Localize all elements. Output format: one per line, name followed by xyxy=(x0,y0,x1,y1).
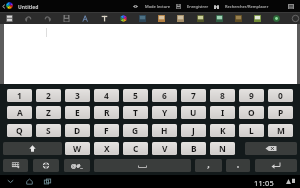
button[interactable]: Tool 7 xyxy=(114,12,132,24)
button[interactable]: 3 xyxy=(65,89,90,102)
staticText: U xyxy=(190,107,197,118)
button[interactable]: Tool 10 xyxy=(171,12,189,24)
button[interactable]: A xyxy=(7,106,32,119)
staticText: Untitled xyxy=(18,4,39,11)
staticText: G xyxy=(132,125,139,136)
button[interactable]: 0 xyxy=(268,89,293,102)
button[interactable]: T xyxy=(123,106,148,119)
staticText: 6 xyxy=(162,90,167,101)
button[interactable]: Period xyxy=(226,159,250,172)
button[interactable]: L xyxy=(239,124,264,137)
button[interactable]: Hide keyboard xyxy=(1,175,19,188)
staticText: Y xyxy=(162,107,168,118)
staticText: 11:05 xyxy=(254,178,274,188)
button[interactable]: U xyxy=(181,106,206,119)
button[interactable]: S xyxy=(36,124,61,137)
button[interactable]: Tool 13 xyxy=(229,12,247,24)
staticText: 2 xyxy=(46,90,51,101)
button[interactable]: More options xyxy=(285,1,296,11)
staticText: F xyxy=(104,125,109,136)
button[interactable]: X xyxy=(94,142,119,155)
button[interactable]: Change keyboard xyxy=(3,159,28,172)
button[interactable]: Input languages xyxy=(33,159,59,172)
button[interactable]: Tool 3 xyxy=(38,12,56,24)
button[interactable]: 7 xyxy=(181,89,206,102)
button[interactable]: K xyxy=(210,124,235,137)
button[interactable]: Tool 6 xyxy=(95,12,113,24)
button[interactable]: Tool 15 xyxy=(267,12,285,24)
button[interactable]: Symbols xyxy=(64,159,90,172)
button[interactable]: I xyxy=(210,106,235,119)
button[interactable]: 5 xyxy=(123,89,148,102)
staticText: 0 xyxy=(278,90,283,101)
button[interactable]: B xyxy=(181,142,206,155)
staticText: @#_ xyxy=(71,162,83,170)
button[interactable] xyxy=(212,1,266,12)
staticText: 1 xyxy=(17,90,22,101)
button[interactable]: Tool 12 xyxy=(210,12,228,24)
staticText: A xyxy=(17,107,23,118)
button[interactable]: C xyxy=(123,142,148,155)
button[interactable]: Tool 14 xyxy=(248,12,266,24)
button[interactable]: Z xyxy=(36,106,61,119)
button[interactable]: N xyxy=(210,142,235,155)
button[interactable]: O xyxy=(239,106,264,119)
staticText: Enregistrer xyxy=(187,4,209,10)
button[interactable]: Backspace xyxy=(245,142,297,155)
staticText: W xyxy=(73,143,82,154)
button[interactable]: 4 xyxy=(94,89,119,102)
button[interactable]: Q xyxy=(7,124,32,137)
staticText: N xyxy=(219,143,226,154)
staticText: D xyxy=(74,125,81,136)
staticText: Rechercher/Remplacer xyxy=(225,4,269,10)
button[interactable]: Back xyxy=(0,0,7,12)
button[interactable]: 9 xyxy=(239,89,264,102)
button[interactable] xyxy=(131,1,170,12)
button[interactable]: Tool 1 xyxy=(0,12,18,24)
button[interactable]: G xyxy=(123,124,148,137)
staticText: J xyxy=(192,125,195,136)
button[interactable]: Recent apps xyxy=(38,175,56,188)
button[interactable]: Tool 2 xyxy=(19,12,37,24)
button[interactable]: Tool 9 xyxy=(152,12,170,24)
staticText: C xyxy=(133,143,139,154)
button[interactable]: Tool 16 xyxy=(286,12,300,24)
button[interactable]: App icon xyxy=(6,2,13,9)
button[interactable]: V xyxy=(152,142,177,155)
button[interactable]: Shift xyxy=(3,142,62,155)
button[interactable]: Enter xyxy=(255,159,297,172)
button[interactable]: 1 xyxy=(7,89,32,102)
staticText: 9 xyxy=(249,90,254,101)
button[interactable]: Tool 4 xyxy=(57,12,75,24)
button[interactable]: 6 xyxy=(152,89,177,102)
staticText: H xyxy=(161,125,168,136)
staticText: R xyxy=(104,107,110,118)
button[interactable]: D xyxy=(65,124,90,137)
button[interactable]: Y xyxy=(152,106,177,119)
button[interactable]: Comma xyxy=(195,159,222,172)
staticText: X xyxy=(104,143,110,154)
button[interactable]: J xyxy=(181,124,206,137)
button[interactable]: M xyxy=(268,124,293,137)
button[interactable]: Space xyxy=(94,159,191,172)
button[interactable]: P xyxy=(268,106,293,119)
button[interactable]: Tool 11 xyxy=(191,12,209,24)
staticText: P xyxy=(278,107,284,118)
staticText: O xyxy=(248,107,255,118)
button[interactable]: F xyxy=(94,124,119,137)
staticText: K xyxy=(220,125,226,136)
button[interactable]: W xyxy=(65,142,90,155)
button[interactable]: 8 xyxy=(210,89,235,102)
button[interactable]: H xyxy=(152,124,177,137)
staticText: M xyxy=(277,125,285,136)
button[interactable]: Tool 8 xyxy=(133,12,151,24)
button[interactable]: Tool 5 xyxy=(76,12,94,24)
staticText: I xyxy=(221,107,225,118)
staticText: T xyxy=(133,107,138,118)
button[interactable]: Home xyxy=(20,175,38,188)
button[interactable]: R xyxy=(94,106,119,119)
button[interactable] xyxy=(174,1,210,12)
button[interactable]: E xyxy=(65,106,90,119)
button[interactable]: 2 xyxy=(36,89,61,102)
staticText: L xyxy=(249,125,254,136)
